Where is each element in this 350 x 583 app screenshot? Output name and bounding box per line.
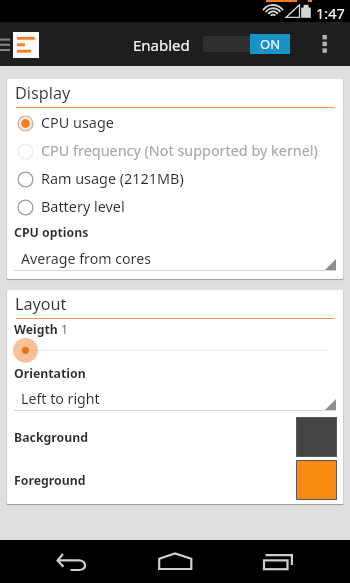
staticText: Display [15,82,71,104]
staticText: ON [260,35,281,53]
button[interactable]: Ram usage (2121MB) [7,165,343,193]
button[interactable]: Battery level [7,193,343,221]
button[interactable]: Home [116,540,233,583]
staticText: Enabled [133,35,190,55]
button[interactable]: CPU frequency (Not supported by kernel) [7,137,343,165]
staticText: Background [14,429,88,446]
button[interactable]: CPU usage [7,109,343,137]
staticText: Average from cores [21,249,151,268]
staticText: 1 [61,321,69,337]
staticText: Orientation [14,365,86,382]
staticText: Left to right [21,389,100,408]
staticText: CPU usage [41,113,114,133]
staticText: Layout [15,293,67,315]
button[interactable]: Open navigation drawer [0,22,39,66]
staticText: CPU options [14,224,89,241]
staticText: Battery level [41,197,125,217]
button[interactable]: Foreground [7,460,343,500]
staticText: 1:47 [316,3,345,23]
button[interactable]: Back [0,540,116,583]
staticText: CPU frequency (Not supported by kernel) [41,141,318,161]
button[interactable]: Average from cores [14,245,336,271]
button[interactable]: Recent apps [233,540,350,583]
button[interactable]: Left to right [14,385,336,411]
button[interactable] [7,335,343,361]
staticText: Ram usage (2121MB) [41,169,184,189]
staticText: Weigth [14,321,58,337]
button[interactable]: More options [308,22,341,66]
button[interactable]: Enabled toggle [200,22,293,66]
staticText: Foreground [14,472,86,489]
button[interactable]: Background [7,417,343,457]
